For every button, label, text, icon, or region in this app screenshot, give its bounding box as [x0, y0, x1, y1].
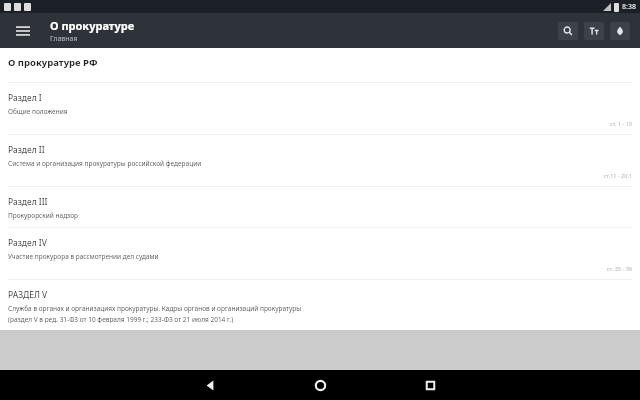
staticText: РАЗДЕЛ V: [8, 289, 48, 301]
button[interactable]: Recent apps: [375, 370, 485, 400]
button[interactable]: Раздел II: [0, 135, 640, 186]
staticText: Общие положения: [8, 107, 68, 116]
button[interactable]: Text size: [584, 22, 604, 40]
staticText: Раздел III: [8, 196, 48, 208]
staticText: Система и организация прокуратуры россий…: [8, 159, 202, 168]
staticText: Прокурорский надзор: [8, 211, 79, 220]
staticText: Раздел I: [8, 92, 42, 104]
staticText: Главная: [50, 34, 78, 44]
staticText: О прокуратуре: [50, 18, 135, 33]
staticText: Участие прокурора в рассмотрении дел суд…: [8, 252, 159, 261]
staticText: ст. 1 - 10: [609, 120, 632, 127]
staticText: ст.11 - 20.1: [603, 172, 632, 179]
button[interactable]: Раздел IV: [0, 228, 640, 279]
button[interactable]: Contrast: [610, 22, 630, 40]
staticText: ст. 35 - 39: [606, 265, 632, 272]
button[interactable]: Home: [265, 370, 375, 400]
button[interactable]: Search: [558, 22, 578, 40]
staticText: 8:38: [622, 2, 636, 12]
staticText: О прокуратуре РФ: [8, 56, 98, 69]
button[interactable]: Back: [155, 370, 265, 400]
staticText: Раздел IV: [8, 237, 47, 249]
staticText: Служба в органах и организациях прокурат…: [8, 304, 302, 313]
staticText: Раздел II: [8, 144, 45, 156]
button[interactable]: Open navigation menu: [10, 18, 36, 44]
button[interactable]: РАЗДЕЛ V: [0, 280, 640, 330]
button[interactable]: Раздел III: [0, 187, 640, 227]
staticText: (раздел V в ред. 31-ФЗ от 10 февраля 199…: [8, 315, 234, 323]
button[interactable]: Раздел I: [0, 83, 640, 134]
